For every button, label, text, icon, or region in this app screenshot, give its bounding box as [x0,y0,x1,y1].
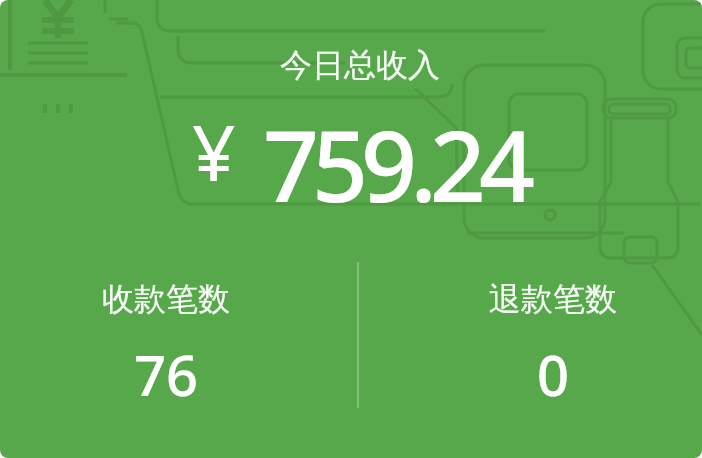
staticText: 退款笔数 [489,279,617,319]
button[interactable]: 今日总收入 [0,0,702,458]
staticText: 收款笔数 [102,279,230,319]
staticText: 759.24 [263,97,528,230]
staticText: 0 [537,336,570,412]
staticText: ¥ [192,100,236,204]
staticText: 76 [134,336,199,412]
button[interactable]: 收款笔数 [36,262,296,410]
staticText: 今日总收入 [280,45,440,85]
button[interactable]: 退款笔数 [423,262,683,410]
